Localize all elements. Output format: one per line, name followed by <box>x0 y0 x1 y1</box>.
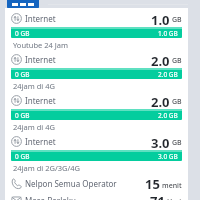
staticText: GB <box>172 138 182 148</box>
staticText: Internet <box>25 136 151 147</box>
staticText: GB <box>172 15 182 25</box>
staticText: Nelpon Semua Operator <box>25 178 145 189</box>
staticText: GB <box>172 56 182 66</box>
staticText: 0 GB <box>15 70 30 79</box>
staticText: 2.0 GB <box>158 111 178 120</box>
staticText: 2.0 <box>151 52 170 67</box>
button[interactable]: Menu <box>7 0 39 9</box>
staticText: Hari <box>167 197 182 200</box>
staticText: 2.0 <box>151 93 170 108</box>
staticText: 24jam di 4G <box>13 122 55 132</box>
staticText: 3.0 <box>151 134 170 149</box>
button[interactable]: Internet <box>5 11 188 52</box>
staticText: 3.0 GB <box>158 152 178 161</box>
button[interactable]: Nelpon Semua Operator <box>5 175 188 192</box>
staticText: menit <box>162 181 182 191</box>
button[interactable]: Masa Berlaku <box>5 192 188 200</box>
staticText: Youtube 24 Jam <box>13 40 68 50</box>
staticText: Internet <box>25 13 151 24</box>
staticText: 15 <box>145 175 160 192</box>
staticText: 1.0 GB <box>158 29 178 38</box>
staticText: GB <box>172 97 182 107</box>
staticText: 0 GB <box>15 29 30 38</box>
staticText: 2.0 GB <box>158 70 178 79</box>
button[interactable]: Internet <box>5 93 188 134</box>
staticText: 71 <box>150 192 165 200</box>
staticText: Internet <box>25 54 151 65</box>
staticText: 0 GB <box>15 152 30 161</box>
staticText: 24jam di 4G <box>13 81 55 91</box>
staticText: 24jam di 2G/3G/4G <box>13 163 81 173</box>
button[interactable]: Internet <box>5 134 188 175</box>
button[interactable]: Internet <box>5 52 188 93</box>
staticText: Internet <box>25 95 151 106</box>
staticText: 1.0 <box>151 11 170 26</box>
staticText: 0 GB <box>15 111 30 120</box>
staticText: Masa Berlaku <box>25 195 150 200</box>
